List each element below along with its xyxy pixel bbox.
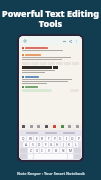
- button[interactable]: Format tool 1: [21, 124, 26, 129]
- staticText: B: [55, 149, 58, 153]
- staticText: U: [59, 137, 62, 141]
- button[interactable]: Share: [67, 38, 73, 44]
- button[interactable]: G: [49, 142, 54, 147]
- staticText: I: [66, 137, 68, 141]
- button[interactable]: Format tool 3: [36, 124, 41, 129]
- staticText: J: [63, 143, 64, 147]
- staticText: X: [36, 149, 38, 153]
- button[interactable]: W: [27, 136, 33, 141]
- staticText: M: [69, 149, 72, 153]
- staticText: E: [36, 137, 38, 141]
- staticText: V: [48, 149, 50, 153]
- button[interactable]: C: [40, 148, 45, 153]
- button[interactable]: Q: [20, 136, 26, 141]
- button[interactable]: N: [60, 148, 66, 153]
- staticText: D: [38, 143, 41, 147]
- button[interactable]: D: [37, 142, 42, 147]
- button[interactable]: Undo: [61, 38, 67, 44]
- button[interactable]: E: [34, 136, 39, 141]
- button[interactable]: Z: [28, 148, 33, 153]
- button[interactable]: Format tool 4: [44, 124, 49, 129]
- button[interactable]: Format tool 7: [67, 124, 72, 129]
- button[interactable]: Format tool 2: [29, 124, 34, 129]
- staticText: L: [75, 143, 77, 147]
- button[interactable]: Format tool 6: [60, 124, 65, 129]
- button[interactable]: I: [64, 136, 69, 141]
- button[interactable]: P: [76, 136, 81, 141]
- button[interactable]: F: [43, 142, 48, 147]
- staticText: S: [32, 143, 34, 147]
- staticText: Y: [54, 137, 56, 141]
- button[interactable]: Format tool 5: [52, 124, 57, 129]
- staticText: A: [25, 143, 28, 147]
- staticText: G: [50, 143, 53, 147]
- staticText: F: [45, 143, 47, 147]
- button[interactable]: K: [67, 142, 72, 147]
- button[interactable]: M: [67, 148, 73, 153]
- button[interactable]: J: [61, 142, 66, 147]
- button[interactable]: V: [46, 148, 52, 153]
- staticText: N: [62, 149, 65, 153]
- staticText: Write, format & record audio: [25, 33, 76, 38]
- button[interactable]: O: [70, 136, 75, 141]
- staticText: W: [29, 137, 32, 141]
- staticText: P: [78, 137, 80, 141]
- staticText: C: [41, 149, 44, 153]
- button[interactable]: A: [23, 142, 29, 147]
- button[interactable]: More options: [73, 38, 79, 44]
- staticText: O: [71, 137, 74, 141]
- staticText: Note Keeper : Your Smart Notebook: [17, 171, 85, 176]
- staticText: H: [56, 143, 59, 147]
- staticText: Q: [22, 137, 25, 141]
- button[interactable]: T: [46, 136, 51, 141]
- button[interactable]: R: [40, 136, 45, 141]
- staticText: R: [41, 137, 44, 141]
- button[interactable]: U: [58, 136, 63, 141]
- button[interactable]: L: [73, 142, 78, 147]
- button[interactable]: Back: [22, 38, 28, 44]
- button[interactable]: B: [53, 148, 59, 153]
- staticText: Z: [30, 149, 32, 153]
- staticText: K: [68, 143, 71, 147]
- staticText: Powerful Text Editing Tools: [2, 7, 99, 30]
- button[interactable]: Y: [52, 136, 57, 141]
- button[interactable]: Format tool 8: [75, 124, 80, 129]
- staticText: T: [48, 137, 50, 141]
- button[interactable]: H: [55, 142, 60, 147]
- button[interactable]: S: [30, 142, 36, 147]
- button[interactable]: X: [34, 148, 39, 153]
